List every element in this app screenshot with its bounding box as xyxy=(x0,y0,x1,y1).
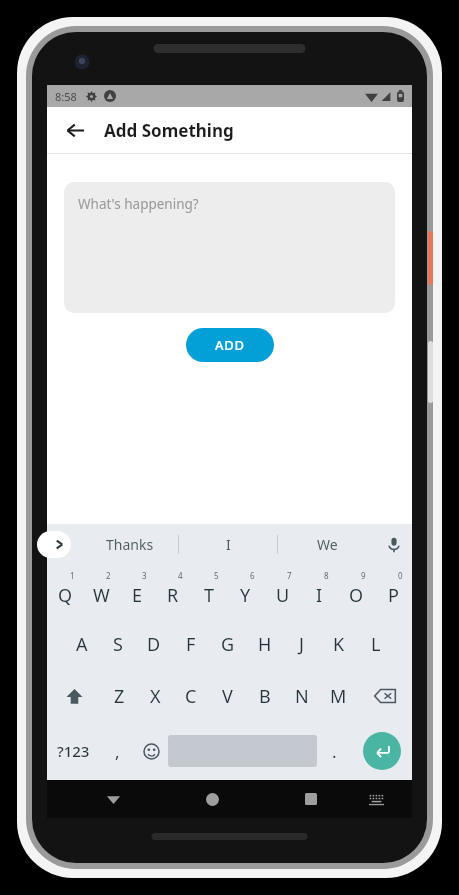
button[interactable]: Thanks xyxy=(81,524,178,565)
staticText: C xyxy=(185,684,197,709)
staticText: S xyxy=(113,632,123,657)
staticText: A xyxy=(76,632,88,657)
staticText: ADD xyxy=(215,336,245,354)
button[interactable]: 8 xyxy=(301,565,338,618)
staticText: We xyxy=(317,535,338,554)
staticText: 3 xyxy=(142,570,147,581)
staticText: 0 xyxy=(398,570,403,581)
button[interactable]: Home xyxy=(192,780,232,818)
button[interactable]: What's happening? xyxy=(64,182,395,313)
staticText: . xyxy=(332,740,337,763)
staticText: Z xyxy=(114,684,125,709)
button[interactable]: 2 xyxy=(83,565,119,618)
staticText: H xyxy=(258,632,272,657)
staticText: K xyxy=(333,632,345,657)
button[interactable]: . xyxy=(317,722,351,780)
staticText: M xyxy=(330,684,347,709)
button[interactable]: B xyxy=(246,670,283,722)
staticText: X xyxy=(150,684,161,709)
button[interactable]: I xyxy=(179,524,277,565)
staticText: Thanks xyxy=(106,535,154,554)
staticText: J xyxy=(299,632,304,657)
button[interactable]: ADD xyxy=(186,328,274,362)
staticText: G xyxy=(221,632,235,657)
button[interactable]: A xyxy=(64,618,100,670)
button[interactable]: D xyxy=(136,618,172,670)
staticText: E xyxy=(132,583,143,608)
staticText: L xyxy=(371,632,381,657)
button[interactable]: L xyxy=(357,618,394,670)
button[interactable]: Voice input xyxy=(376,524,412,565)
staticText: ?123 xyxy=(57,741,90,761)
staticText: W xyxy=(93,583,110,608)
staticText: 9 xyxy=(361,570,366,581)
button[interactable]: Back xyxy=(57,112,93,148)
button[interactable]: Shift xyxy=(47,670,101,722)
button[interactable]: X xyxy=(137,670,173,722)
button[interactable]: M xyxy=(320,670,357,722)
button[interactable]: More suggestions xyxy=(37,531,71,558)
button[interactable]: Recent apps xyxy=(291,780,331,818)
staticText: Y xyxy=(240,583,251,608)
staticText: , xyxy=(115,740,120,763)
staticText: 1 xyxy=(70,570,75,581)
staticText: 8:58 xyxy=(55,89,77,104)
staticText: I xyxy=(226,535,231,554)
staticText: F xyxy=(186,632,196,657)
button[interactable]: H xyxy=(246,618,283,670)
staticText: Add Something xyxy=(104,119,234,142)
staticText: 2 xyxy=(106,570,111,581)
staticText: U xyxy=(276,583,290,608)
button[interactable]: Enter xyxy=(363,732,401,770)
staticText: N xyxy=(295,684,309,709)
button[interactable]: ?123 xyxy=(47,722,100,780)
button[interactable]: Emoji xyxy=(134,722,168,780)
button[interactable]: Switch keyboard xyxy=(356,780,396,818)
button[interactable]: 6 xyxy=(227,565,264,618)
staticText: 6 xyxy=(250,570,255,581)
button[interactable]: 0 xyxy=(375,565,412,618)
button[interactable]: Z xyxy=(101,670,137,722)
button[interactable]: 5 xyxy=(191,565,227,618)
button[interactable]: 7 xyxy=(264,565,301,618)
staticText: O xyxy=(349,583,364,608)
staticText: B xyxy=(259,684,271,709)
staticText: V xyxy=(222,684,233,709)
button[interactable]: S xyxy=(100,618,136,670)
button[interactable]: 3 xyxy=(119,565,155,618)
button[interactable]: V xyxy=(209,670,246,722)
button[interactable]: G xyxy=(209,618,246,670)
button[interactable]: 4 xyxy=(155,565,191,618)
button[interactable]: F xyxy=(172,618,209,670)
staticText: 7 xyxy=(287,570,292,581)
button[interactable]: K xyxy=(320,618,357,670)
staticText: What's happening? xyxy=(78,195,199,213)
staticText: 5 xyxy=(214,570,219,581)
staticText: P xyxy=(388,583,399,608)
button[interactable]: C xyxy=(173,670,209,722)
button[interactable]: Backspace xyxy=(357,670,412,722)
button[interactable]: 9 xyxy=(338,565,375,618)
button[interactable]: N xyxy=(283,670,320,722)
staticText: D xyxy=(147,632,161,657)
staticText: T xyxy=(204,583,215,608)
staticText: 8 xyxy=(324,570,329,581)
staticText: Q xyxy=(58,583,73,608)
button[interactable]: , xyxy=(100,722,134,780)
button[interactable]: J xyxy=(283,618,320,670)
staticText: 4 xyxy=(178,570,183,581)
button[interactable]: Hide keyboard xyxy=(93,780,133,818)
staticText: R xyxy=(167,583,179,608)
staticText: I xyxy=(316,583,323,608)
button[interactable]: 1 xyxy=(47,565,83,618)
button[interactable]: We xyxy=(278,524,376,565)
